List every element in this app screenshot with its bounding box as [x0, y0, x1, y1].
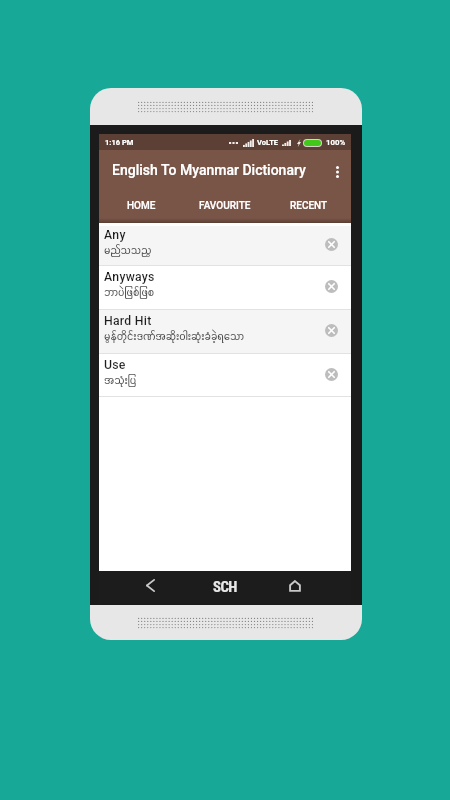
staticText: 1:16 PM: [105, 138, 134, 147]
button[interactable]: Remove: [315, 266, 347, 307]
staticText: ဘာပဲဖြစ်ဖြစ: [104, 285, 155, 300]
staticText: Hard Hit: [104, 314, 152, 328]
button[interactable]: Hard Hit: [99, 310, 351, 353]
button[interactable]: FAVOURITE: [183, 193, 267, 218]
button[interactable]: Any: [99, 226, 351, 265]
staticText: 100%: [326, 138, 346, 147]
staticText: မွန်တိုင်းဒဏ်အဆိုးဝါးဆုံးခံခဲ့ရသော: [104, 329, 245, 344]
button[interactable]: RECENT: [267, 193, 351, 218]
staticText: SCH: [213, 578, 237, 595]
staticText: Anyways: [104, 270, 155, 284]
button[interactable]: Anyways: [99, 266, 351, 309]
button[interactable]: Remove: [315, 354, 347, 394]
button[interactable]: Use: [99, 354, 351, 396]
button[interactable]: SCH: [203, 571, 247, 602]
staticText: Any: [104, 228, 126, 242]
staticText: မည်သသညွ: [104, 243, 152, 258]
staticText: Use: [104, 358, 126, 372]
staticText: အသုံးပြ: [104, 373, 137, 388]
button[interactable]: HOME: [99, 193, 183, 218]
button[interactable]: Remove: [315, 310, 347, 351]
staticText: VoLTE: [257, 138, 279, 147]
button[interactable]: Remove: [315, 226, 347, 263]
button[interactable]: Home: [277, 571, 313, 600]
button[interactable]: Back: [132, 571, 168, 600]
staticText: HOME: [127, 200, 156, 212]
button[interactable]: More options: [323, 150, 351, 193]
staticText: FAVOURITE: [199, 200, 251, 212]
staticText: RECENT: [290, 200, 328, 212]
staticText: English To Myanmar Dictionary: [112, 162, 306, 178]
